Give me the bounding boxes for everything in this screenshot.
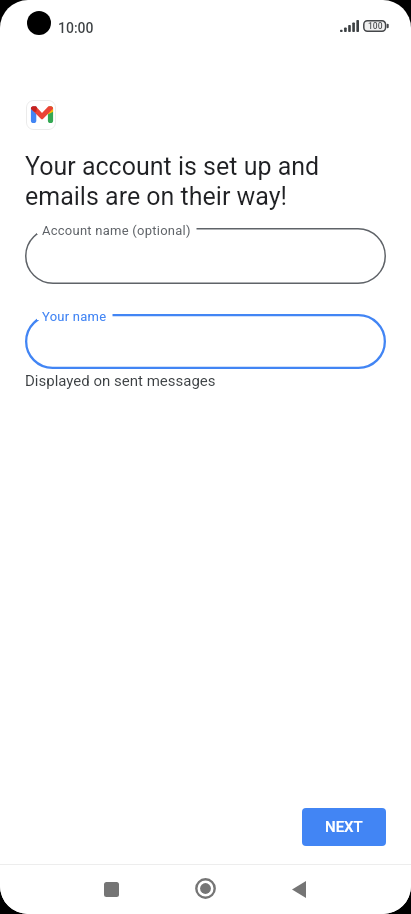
button[interactable]: Home	[190, 873, 221, 904]
button[interactable]: Back	[283, 874, 314, 905]
button[interactable]: Recent apps	[96, 874, 127, 905]
staticText: Displayed on sent messages	[25, 372, 216, 390]
staticText: Your name	[42, 309, 107, 324]
button[interactable]: Your name	[25, 314, 386, 369]
staticText: Your account is set up and emails are on…	[25, 152, 320, 211]
staticText: Account name (optional)	[42, 223, 191, 238]
button[interactable]: NEXT	[302, 808, 386, 846]
staticText: 10:00	[58, 20, 94, 36]
staticText: 100	[368, 21, 383, 31]
button[interactable]: Account name (optional)	[25, 228, 386, 284]
staticText: NEXT	[325, 818, 363, 836]
